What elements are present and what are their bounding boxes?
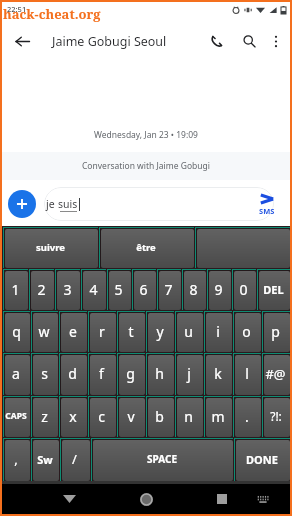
button[interactable]: ?!: — [264, 398, 290, 437]
staticText: je — [46, 197, 58, 211]
staticText: v — [127, 407, 135, 426]
staticText: z — [41, 407, 48, 426]
button[interactable]: 4 — [83, 271, 106, 310]
button[interactable]: suivre — [5, 229, 98, 268]
button[interactable]: t — [119, 313, 145, 352]
staticText: m — [211, 407, 225, 426]
button[interactable]: être — [101, 229, 194, 268]
button[interactable]: s — [33, 355, 58, 395]
button[interactable]: v — [119, 398, 145, 437]
button[interactable]: More options — [265, 22, 286, 60]
button[interactable]: DEL — [259, 271, 290, 310]
staticText: suivre — [36, 241, 65, 254]
staticText: 8 — [189, 280, 198, 299]
button[interactable]: Back — [55, 485, 83, 513]
staticText: i — [216, 322, 220, 341]
button[interactable]: Sw — [33, 440, 59, 481]
staticText: k — [214, 364, 222, 383]
staticText: x — [69, 407, 77, 426]
staticText: d — [68, 364, 77, 383]
staticText: 9 — [214, 280, 223, 299]
button[interactable]: Call — [201, 22, 233, 60]
staticText: Wednesday, Jan 23 • 19:09 — [94, 129, 198, 141]
staticText: 3 — [63, 280, 72, 299]
button[interactable]: SPACE — [93, 440, 233, 481]
staticText: Conversation with Jaime Gobugi — [82, 160, 210, 172]
staticText: 6 — [139, 280, 148, 299]
button[interactable]: 9 — [209, 271, 231, 310]
button[interactable]: r — [90, 313, 116, 352]
button[interactable]: CAPS — [5, 398, 30, 437]
button[interactable]: #@ — [264, 355, 290, 395]
button[interactable]: . — [235, 398, 261, 437]
staticText: #@ — [265, 365, 286, 383]
button[interactable]: k — [206, 355, 232, 395]
staticText: f — [99, 364, 104, 383]
staticText: hack-cheat.org — [3, 5, 101, 22]
button[interactable]: q — [5, 313, 30, 352]
button[interactable]: 3 — [57, 271, 80, 310]
button[interactable]: j — [177, 355, 203, 395]
button[interactable]: o — [235, 313, 261, 352]
staticText: DEL — [263, 282, 284, 297]
staticText: c — [98, 407, 105, 426]
staticText: 1 — [11, 280, 20, 299]
button[interactable]: f — [90, 355, 116, 395]
button[interactable]: Home — [131, 484, 161, 514]
staticText: 22:51 — [7, 4, 27, 14]
button[interactable]: 2 — [31, 271, 54, 310]
button[interactable]: Add attachment — [8, 190, 36, 218]
button[interactable]: c — [90, 398, 116, 437]
staticText: h — [155, 364, 164, 383]
staticText: n — [184, 407, 193, 426]
staticText: l — [245, 364, 249, 383]
button[interactable]: z — [33, 398, 58, 437]
button[interactable]: Search — [233, 22, 265, 60]
button[interactable]: Back — [2, 22, 42, 60]
staticText: p — [271, 322, 280, 341]
staticText: ?!: — [270, 408, 282, 424]
button[interactable]: 1 — [5, 271, 28, 310]
staticText: DONE — [246, 452, 278, 467]
button[interactable]: Recents — [208, 485, 236, 513]
button[interactable]: m — [206, 398, 232, 437]
staticText: b — [155, 407, 164, 426]
staticText: SMS — [259, 206, 275, 216]
button[interactable]: 7 — [159, 271, 181, 310]
staticText: r — [99, 322, 105, 341]
button[interactable]: g — [119, 355, 145, 395]
button[interactable]: b — [148, 398, 174, 437]
button[interactable]: je — [46, 189, 244, 219]
button[interactable]: d — [61, 355, 87, 395]
button[interactable] — [197, 229, 290, 268]
button[interactable]: h — [148, 355, 174, 395]
staticText: CAPS — [5, 410, 27, 422]
staticText: suis — [58, 197, 78, 211]
staticText: t — [128, 322, 134, 341]
staticText: 5 — [114, 280, 123, 299]
button[interactable]: Send SMS — [244, 182, 290, 226]
button[interactable]: x — [61, 398, 87, 437]
button[interactable]: l — [235, 355, 261, 395]
staticText: 7 — [164, 280, 173, 299]
button[interactable]: i — [206, 313, 232, 352]
button[interactable]: n — [177, 398, 203, 437]
button[interactable]: u — [177, 313, 203, 352]
button[interactable]: 8 — [184, 271, 206, 310]
button[interactable]: 5 — [109, 271, 131, 310]
button[interactable]: , — [5, 440, 30, 481]
button[interactable]: p — [264, 313, 290, 352]
button[interactable]: w — [33, 313, 58, 352]
staticText: y — [156, 322, 164, 341]
staticText: 4 — [89, 280, 98, 299]
button[interactable]: a — [5, 355, 30, 395]
button[interactable]: Switch keyboard — [251, 487, 275, 511]
staticText: j — [187, 364, 191, 383]
button[interactable]: y — [148, 313, 174, 352]
button[interactable]: / — [62, 440, 90, 481]
button[interactable]: DONE — [236, 440, 290, 481]
button[interactable]: 0 — [234, 271, 256, 310]
button[interactable]: 6 — [134, 271, 156, 310]
button[interactable]: e — [61, 313, 87, 352]
staticText: q — [12, 322, 21, 341]
